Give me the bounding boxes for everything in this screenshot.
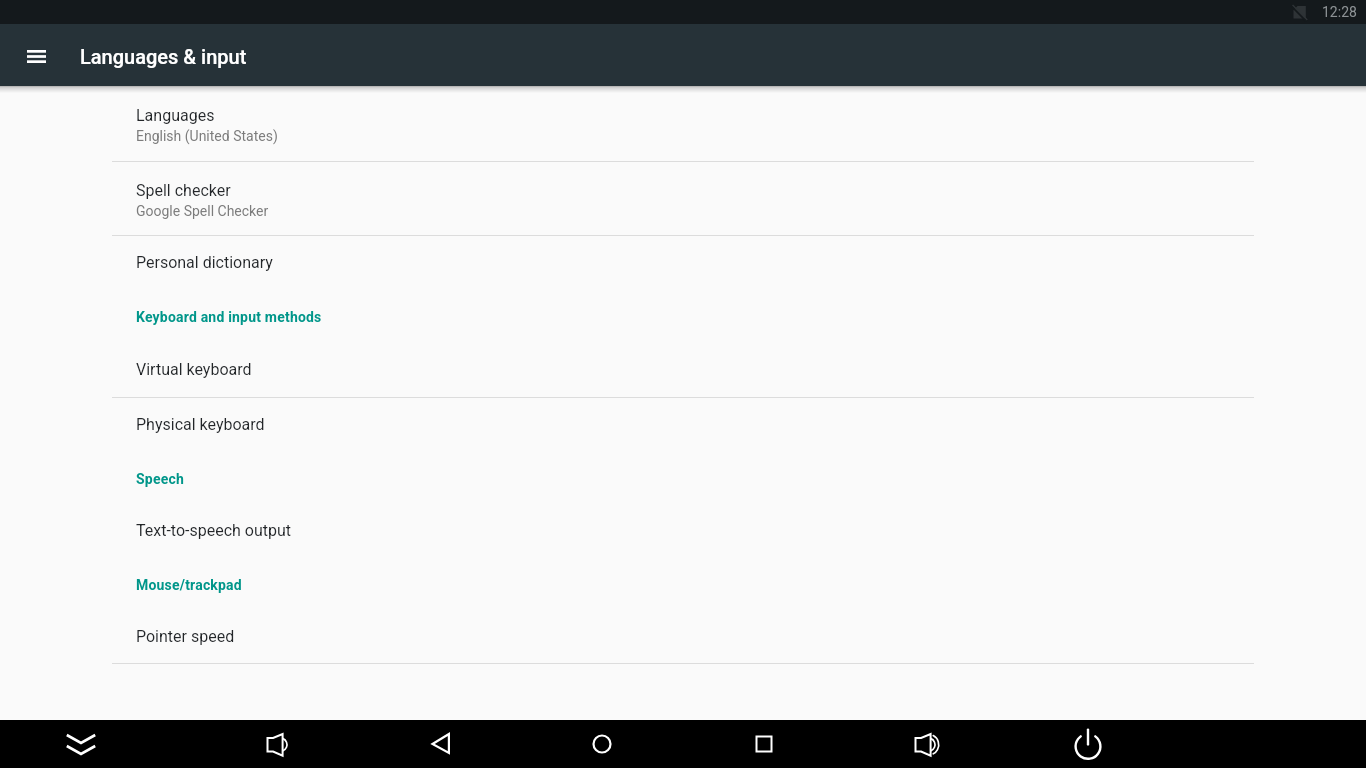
- button[interactable]: Volume down: [254, 720, 302, 768]
- button[interactable]: Navigation menu: [8, 28, 64, 84]
- button[interactable]: Text-to-speech output: [112, 505, 1254, 558]
- button[interactable]: Virtual keyboard: [112, 344, 1254, 397]
- button[interactable]: Physical keyboard: [112, 398, 1254, 452]
- staticText: 12:28: [1322, 4, 1357, 20]
- button[interactable]: Recents: [740, 720, 788, 768]
- staticText: Languages: [136, 106, 215, 125]
- staticText: Virtual keyboard: [136, 360, 252, 379]
- staticText: Google Spell Checker: [136, 203, 269, 219]
- staticText: English (United States): [136, 128, 278, 144]
- staticText: Physical keyboard: [136, 415, 265, 434]
- staticText: Spell checker: [136, 181, 231, 200]
- button[interactable]: Spell checker: [112, 162, 1254, 235]
- staticText: Speech: [136, 471, 184, 487]
- button[interactable]: Back: [417, 720, 465, 768]
- staticText: Mouse/trackpad: [136, 577, 242, 593]
- staticText: Personal dictionary: [136, 253, 273, 272]
- button[interactable]: Languages: [112, 86, 1254, 161]
- staticText: Languages & input: [80, 45, 247, 68]
- button[interactable]: Personal dictionary: [112, 236, 1254, 290]
- button[interactable]: Home: [578, 720, 626, 768]
- button[interactable]: Volume up: [902, 720, 950, 768]
- button[interactable]: Hide navigation bar: [51, 720, 111, 768]
- button[interactable]: Power: [1064, 720, 1112, 768]
- staticText: Pointer speed: [136, 627, 235, 646]
- staticText: Text-to-speech output: [136, 521, 292, 540]
- staticText: Keyboard and input methods: [136, 309, 322, 325]
- button[interactable]: Pointer speed: [112, 611, 1254, 663]
